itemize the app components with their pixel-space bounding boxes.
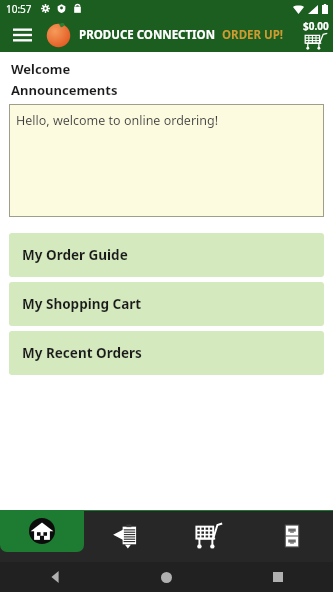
button[interactable]: Past orders [250, 510, 333, 562]
button[interactable]: My Recent Orders [9, 331, 324, 375]
button[interactable]: Back [0, 562, 111, 592]
staticText: PRODUCE CONNECTION [79, 27, 216, 43]
staticText: My Recent Orders [22, 344, 142, 362]
staticText: Welcome [11, 60, 71, 78]
button[interactable]: Home [111, 562, 222, 592]
button[interactable]: Open navigation menu [8, 21, 36, 49]
button[interactable]: My Shopping Cart [9, 282, 324, 326]
button[interactable]: Shopping cart [167, 510, 250, 562]
staticText: Announcements [11, 81, 118, 99]
staticText: 10:57 [6, 2, 32, 16]
button[interactable]: Order guide [84, 510, 167, 562]
staticText: My Order Guide [22, 246, 128, 264]
button[interactable]: My Order Guide [9, 233, 324, 277]
button[interactable]: Recent apps [222, 562, 333, 592]
button[interactable]: Shopping cart, total $0.00 [303, 19, 329, 50]
staticText: My Shopping Cart [22, 295, 142, 313]
button[interactable]: Home [0, 510, 84, 562]
staticText: ORDER UP! [222, 27, 284, 43]
staticText: Hello, welcome to online ordering! [16, 112, 219, 129]
staticText: $0.00 [303, 19, 329, 33]
